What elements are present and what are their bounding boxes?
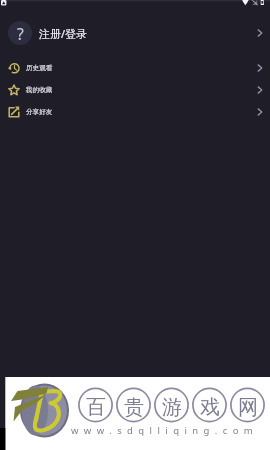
staticText: 网 bbox=[238, 395, 258, 420]
staticText: ? bbox=[17, 23, 24, 44]
staticText: 分享好友 bbox=[26, 108, 53, 116]
staticText: 历史观看 bbox=[26, 64, 53, 72]
staticText: www.sdqlliqing.com bbox=[71, 424, 259, 437]
staticText: 注册/登录 bbox=[39, 26, 88, 41]
button[interactable]: Share bbox=[0, 101, 270, 123]
staticText: 戏 bbox=[200, 395, 220, 420]
other: History bbox=[8, 62, 20, 74]
other: Share bbox=[8, 106, 20, 118]
other: Favorites bbox=[8, 84, 20, 96]
staticText: 游 bbox=[162, 395, 182, 420]
button[interactable]: Favorites bbox=[0, 79, 270, 101]
staticText: 百 bbox=[86, 395, 106, 420]
button[interactable]: History bbox=[0, 57, 270, 79]
staticText: 我的收藏 bbox=[26, 86, 53, 94]
staticText: 贵 bbox=[124, 395, 144, 420]
button[interactable]: ? bbox=[0, 14, 270, 52]
